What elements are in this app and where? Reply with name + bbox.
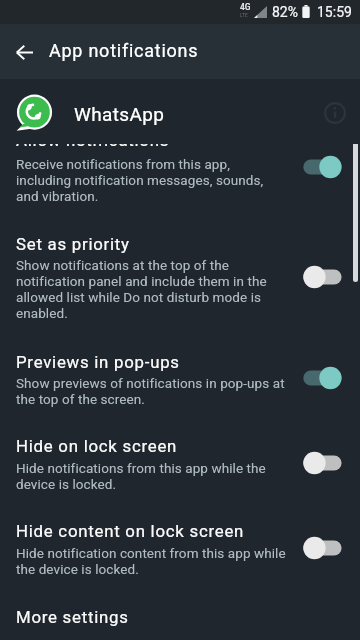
- staticText: More settings: [16, 607, 346, 627]
- staticText: 15:59: [317, 4, 352, 20]
- staticText: Show previews of notifications in pop-up…: [16, 375, 346, 407]
- staticText: 4G: [240, 2, 251, 12]
- button[interactable]: App info: [323, 101, 347, 125]
- staticText: Show notifications at the top of the not…: [16, 257, 346, 321]
- staticText: Set as priority: [16, 234, 346, 254]
- staticText: Allow notifications: [16, 130, 346, 150]
- staticText: Previews in pop-ups: [16, 352, 346, 372]
- staticText: Receive notifications from this app, inc…: [16, 156, 346, 204]
- staticText: Hide notifications from this app while t…: [16, 460, 346, 492]
- button[interactable]: WhatsApp: [0, 79, 360, 144]
- staticText: WhatsApp: [74, 103, 165, 125]
- staticText: LTE: [240, 12, 248, 18]
- staticText: Hide content on lock screen: [16, 521, 346, 541]
- staticText: 82%: [272, 4, 298, 20]
- button[interactable]: Off: [299, 257, 347, 297]
- button[interactable]: Off: [299, 528, 347, 568]
- button[interactable]: On: [299, 358, 347, 398]
- staticText: App notifications: [49, 40, 199, 61]
- button[interactable]: Back: [0, 28, 48, 76]
- staticText: Hide notification content from this app …: [16, 545, 346, 577]
- staticText: Hide on lock screen: [16, 436, 346, 456]
- button[interactable]: On: [299, 147, 347, 187]
- button[interactable]: Off: [299, 443, 347, 483]
